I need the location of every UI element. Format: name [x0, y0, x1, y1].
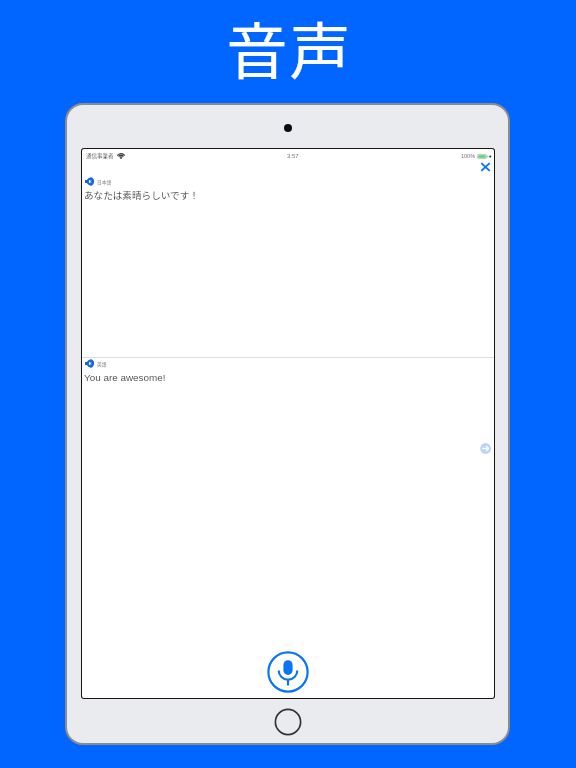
staticText: 通信事業者	[86, 152, 114, 160]
staticText: You are awesome!	[84, 372, 166, 383]
button[interactable]: Close	[474, 157, 493, 176]
button[interactable]: Next	[479, 442, 492, 455]
staticText: 英語	[97, 360, 107, 367]
button[interactable]: 英語	[85, 359, 107, 368]
staticText: 3:57	[287, 153, 299, 160]
staticText: 音声	[226, 3, 353, 91]
staticText: あなたは素晴らしいです！	[84, 188, 199, 202]
button[interactable]: Microphone	[266, 650, 310, 694]
button[interactable]: 日本語	[85, 177, 112, 186]
staticText: 100%	[461, 153, 476, 159]
staticText: 日本語	[97, 178, 112, 185]
